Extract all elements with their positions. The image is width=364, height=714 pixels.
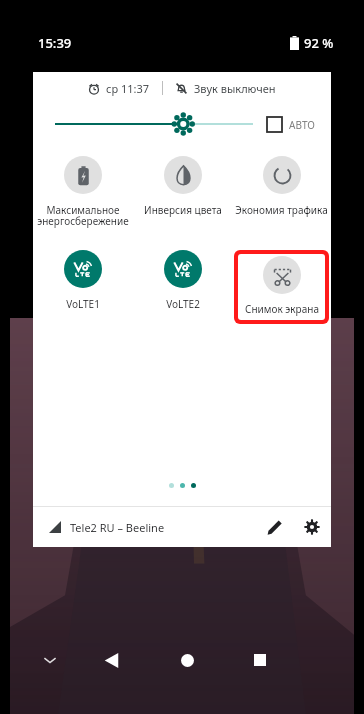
button[interactable]: VoLTE2 bbox=[133, 250, 232, 311]
button[interactable]: Back bbox=[94, 643, 128, 677]
staticText: Максимальное энергосбережение bbox=[37, 203, 129, 228]
button[interactable]: Максимальное энергосбережение bbox=[33, 156, 133, 228]
staticText: VoLTE1 bbox=[66, 297, 100, 311]
staticText: Экономия трафика bbox=[235, 203, 328, 217]
button[interactable]: Снимок экрана bbox=[238, 254, 325, 316]
staticText: АВТО bbox=[289, 118, 315, 132]
button[interactable]: АВТО bbox=[267, 117, 315, 132]
button[interactable]: Collapse bbox=[36, 646, 64, 674]
button[interactable]: Home bbox=[170, 643, 204, 677]
button[interactable]: Tele2 RU – Beeline bbox=[33, 507, 257, 547]
button[interactable]: Звук выключен bbox=[173, 81, 278, 96]
button[interactable]: Экономия трафика bbox=[232, 156, 331, 217]
staticText: VoLTE2 bbox=[166, 297, 200, 311]
button[interactable]: Recent apps bbox=[243, 643, 277, 677]
button[interactable]: VoLTE1 bbox=[33, 250, 133, 311]
staticText: Tele2 RU – Beeline bbox=[70, 520, 165, 535]
button[interactable] bbox=[55, 109, 257, 139]
staticText: Инверсия цвета bbox=[144, 203, 222, 217]
button[interactable]: ср 11:37 bbox=[86, 81, 152, 96]
staticText: 15:39 bbox=[38, 34, 72, 52]
button[interactable]: Инверсия цвета bbox=[133, 156, 232, 217]
button[interactable]: Settings bbox=[297, 510, 331, 544]
staticText: Снимок экрана bbox=[245, 302, 319, 316]
button[interactable]: Edit tiles bbox=[257, 510, 291, 544]
staticText: Звук выключен bbox=[194, 81, 276, 96]
staticText: ср 11:37 bbox=[106, 81, 150, 96]
staticText: 92 % bbox=[304, 34, 334, 52]
